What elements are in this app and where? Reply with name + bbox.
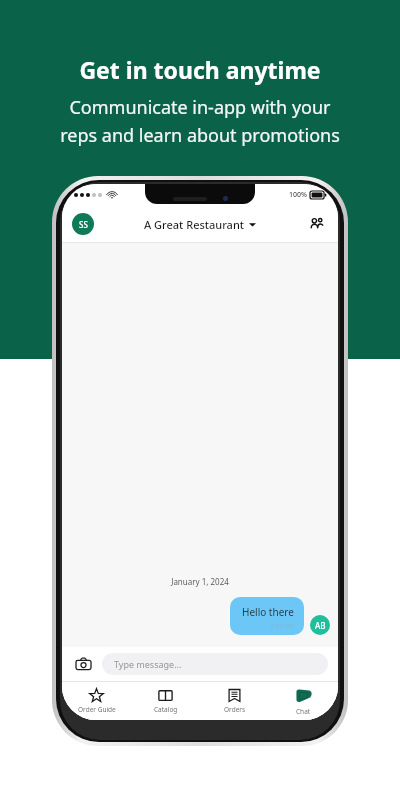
button[interactable]: Orders bbox=[200, 682, 269, 720]
button[interactable]: Catalog bbox=[131, 682, 200, 720]
staticText: January 1, 2024 bbox=[62, 576, 338, 587]
staticText: 100% bbox=[289, 190, 307, 200]
staticText: SS bbox=[79, 219, 88, 230]
staticText: 8:20 PM bbox=[271, 622, 294, 630]
staticText: Type message... bbox=[114, 658, 182, 670]
button[interactable]: Type message... bbox=[102, 653, 328, 675]
staticText: AB bbox=[315, 620, 326, 631]
staticText: Order Guide bbox=[78, 705, 116, 714]
staticText: Get in touch anytime bbox=[79, 54, 321, 85]
button[interactable]: SS bbox=[72, 213, 94, 235]
staticText: Communicate in-app with your bbox=[69, 95, 331, 120]
staticText: A Great Restaurant bbox=[144, 217, 245, 232]
button[interactable]: Take photo bbox=[72, 653, 94, 675]
staticText: Chat bbox=[296, 707, 311, 716]
button[interactable]: Chat bbox=[269, 682, 338, 720]
button[interactable]: Contacts bbox=[306, 213, 328, 235]
staticText: Catalog bbox=[154, 705, 178, 714]
staticText: reps and learn about promotions bbox=[60, 123, 340, 148]
staticText: Orders bbox=[224, 705, 246, 714]
button[interactable]: A Great Restaurant bbox=[144, 217, 256, 232]
staticText: Hello there bbox=[242, 605, 294, 619]
button[interactable]: Order Guide bbox=[62, 682, 131, 720]
